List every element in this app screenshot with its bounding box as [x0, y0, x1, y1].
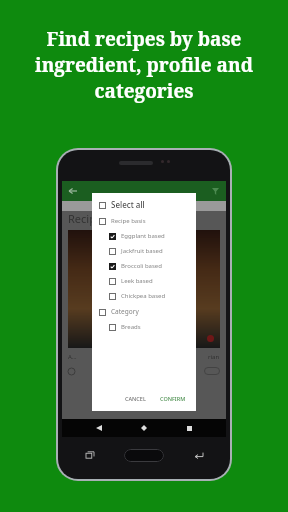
staticText: Leek based — [121, 277, 153, 285]
staticText: CANCEL — [125, 395, 146, 402]
button[interactable]: Home — [124, 449, 164, 462]
staticText: A… — [68, 353, 77, 361]
button[interactable]: Back — [189, 446, 207, 464]
button[interactable]: Recipe basis — [92, 217, 196, 225]
staticText: Recipes — [68, 211, 108, 226]
button[interactable]: Breads — [92, 323, 196, 331]
staticText: rian — [208, 353, 220, 361]
staticText: Jackfruit based — [121, 247, 163, 255]
button[interactable]: Chickpea based — [92, 292, 196, 300]
staticText: Broccoli based — [121, 262, 162, 270]
staticText: Recipe basis — [111, 217, 146, 225]
button[interactable]: Category — [92, 307, 196, 316]
button[interactable]: Filter — [209, 185, 221, 197]
button[interactable]: Jackfruit based — [92, 247, 196, 255]
staticText: 11:50 — [65, 183, 78, 190]
staticText: ingredient, profile and — [10, 52, 278, 78]
button[interactable]: Back — [67, 185, 79, 197]
button[interactable]: Broccoli based — [92, 262, 196, 270]
button[interactable]: Recent apps — [81, 446, 99, 464]
staticText: Breads — [121, 323, 141, 331]
button[interactable]: CONFIRM — [156, 392, 190, 405]
button[interactable]: Recents — [181, 420, 197, 436]
button[interactable]: Home — [136, 420, 152, 436]
button[interactable]: Back — [91, 420, 107, 436]
staticText: Eggplant based — [121, 232, 165, 240]
staticText: CONFIRM — [160, 395, 186, 402]
staticText: categories — [10, 78, 278, 104]
staticText: Select all — [111, 199, 145, 210]
staticText: Chickpea based — [121, 292, 166, 300]
staticText: Find recipes by base — [10, 26, 278, 52]
staticText: Category — [111, 307, 139, 316]
button[interactable]: Leek based — [92, 277, 196, 285]
button[interactable]: CANCEL — [121, 392, 150, 405]
button[interactable]: Select all — [92, 199, 196, 210]
button[interactable]: Eggplant based — [92, 232, 196, 240]
